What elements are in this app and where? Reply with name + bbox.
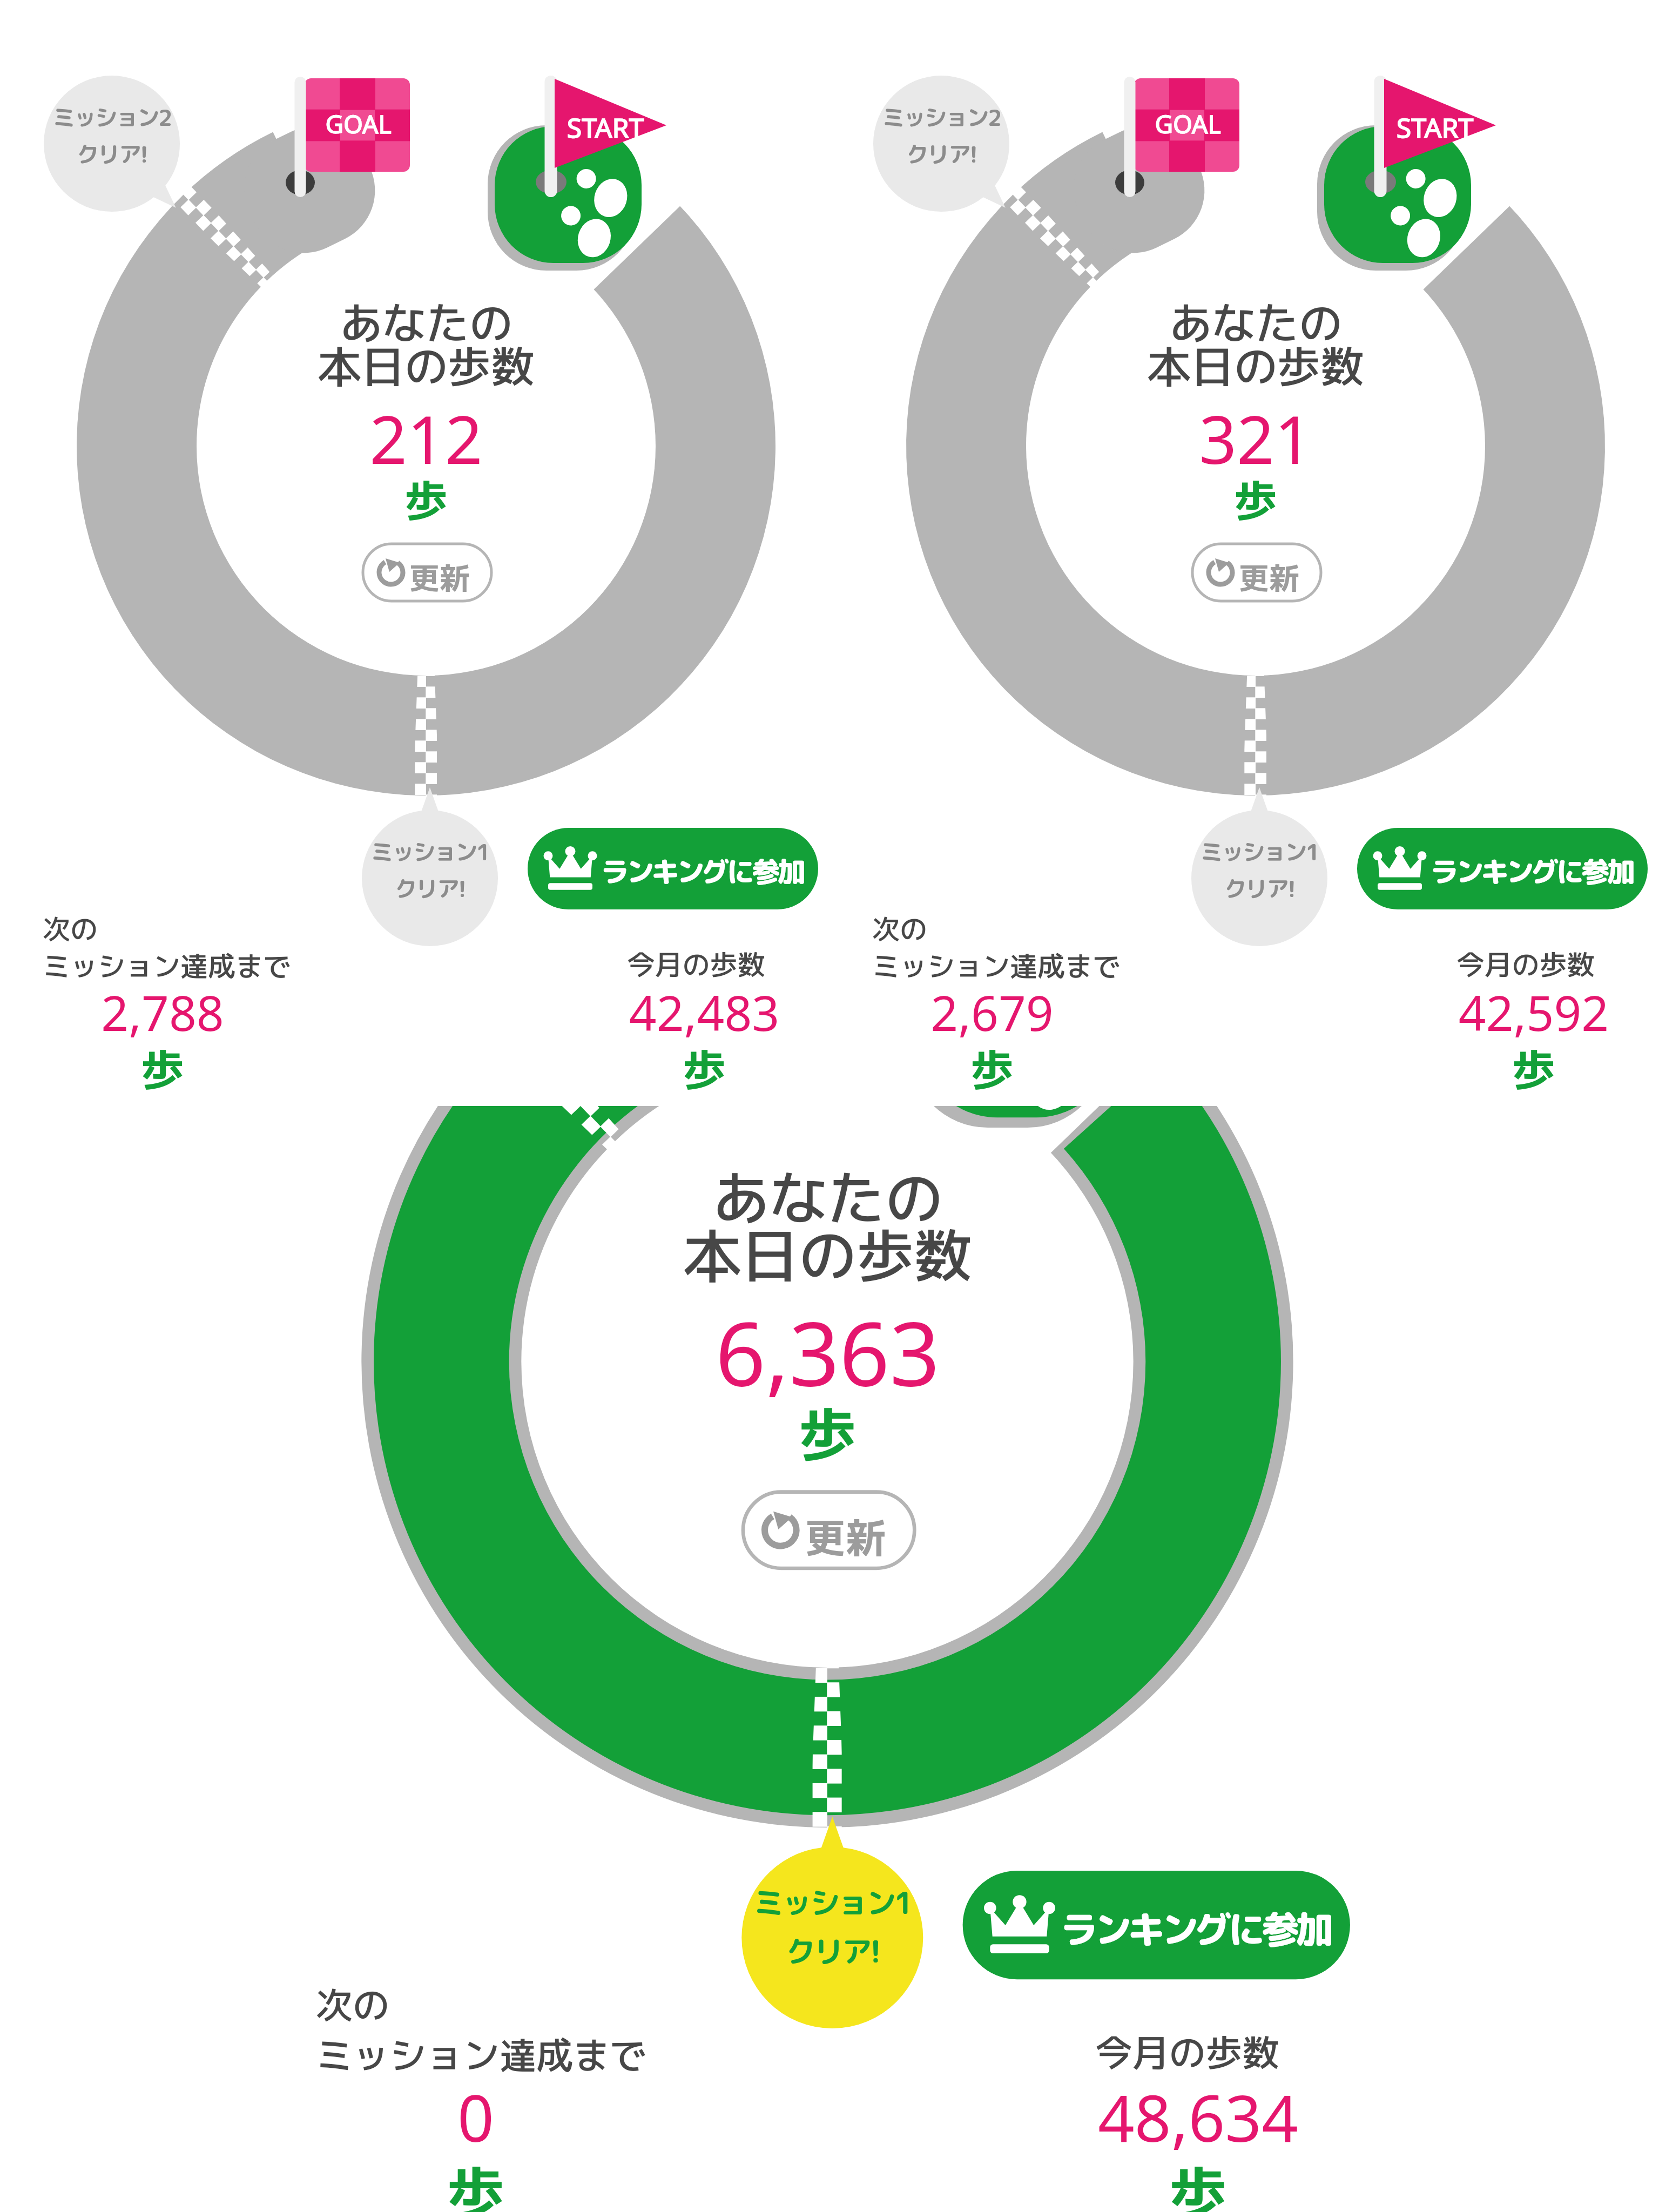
- staticText: GOAL: [306, 107, 411, 141]
- staticText: 48,634: [996, 2073, 1400, 2161]
- staticText: 更新: [409, 557, 517, 599]
- staticText: 2,788: [49, 980, 276, 1045]
- staticText: 更新: [1239, 557, 1347, 599]
- staticText: 歩: [325, 2152, 627, 2212]
- staticText: 歩: [1040, 470, 1472, 530]
- staticText: 歩: [539, 1393, 1116, 1474]
- staticText: 今月の歩数: [1374, 945, 1659, 983]
- staticText: あなたの 本日の歩数: [1040, 293, 1472, 396]
- staticText: ミッション2 クリア!: [42, 102, 182, 170]
- staticText: GOAL: [1135, 107, 1240, 141]
- staticText: 歩: [996, 2152, 1400, 2212]
- staticText: ミッション1 クリア!: [739, 1881, 926, 1972]
- staticText: 6,363: [539, 1292, 1116, 1412]
- staticText: 次の ミッション達成まで: [872, 909, 1218, 986]
- staticText: ミッション2 クリア!: [871, 102, 1011, 170]
- staticText: START: [1386, 109, 1483, 146]
- staticText: 次の ミッション達成まで: [316, 1979, 777, 2081]
- staticText: 2,679: [879, 980, 1105, 1045]
- staticText: 歩: [879, 1039, 1105, 1100]
- staticText: 42,592: [1382, 980, 1659, 1045]
- staticText: 歩: [1382, 1039, 1659, 1100]
- staticText: 歩: [210, 470, 642, 530]
- staticText: ランキングに参加: [601, 852, 871, 891]
- staticText: 42,483: [553, 980, 855, 1045]
- staticText: 0: [325, 2073, 627, 2161]
- staticText: 212: [210, 394, 642, 483]
- staticText: あなたの 本日の歩数: [210, 293, 642, 396]
- staticText: 歩: [49, 1039, 276, 1100]
- staticText: ランキングに参加: [1431, 852, 1659, 891]
- staticText: 今月の歩数: [545, 945, 847, 983]
- staticText: ランキングに参加: [1061, 1903, 1421, 1955]
- staticText: 歩: [553, 1039, 855, 1100]
- staticText: ミッション1 クリア!: [1189, 836, 1330, 905]
- staticText: 321: [1040, 394, 1472, 483]
- staticText: あなたの 本日の歩数: [539, 1157, 1116, 1296]
- staticText: START: [557, 109, 654, 146]
- staticText: 更新: [805, 1509, 949, 1566]
- staticText: ミッション1 クリア!: [360, 836, 500, 905]
- staticText: 今月の歩数: [986, 2027, 1389, 2078]
- staticText: 次の ミッション達成まで: [43, 909, 388, 986]
